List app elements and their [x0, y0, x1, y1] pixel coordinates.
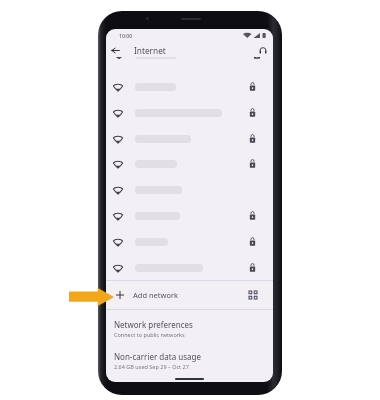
staticText: 2.64 GB used Sep 29 – Oct 27: [114, 363, 189, 370]
other: Callout arrow: [69, 288, 114, 306]
button[interactable]: [106, 177, 273, 202]
staticText: Connect to public networks: [114, 331, 185, 338]
button[interactable]: [106, 229, 273, 254]
staticText: 10:00: [119, 32, 133, 39]
button[interactable]: [106, 74, 273, 99]
staticText: Network preferences: [114, 319, 193, 330]
button[interactable]: [106, 203, 273, 228]
button[interactable]: Network preferences: [106, 313, 273, 344]
button[interactable]: [106, 255, 273, 280]
staticText: Non-carrier data usage: [114, 351, 201, 362]
staticText: Add network: [133, 290, 179, 300]
button[interactable]: Scan QR code to add network: [246, 288, 260, 302]
button[interactable]: Help and feedback: [253, 39, 273, 61]
button[interactable]: [106, 151, 273, 176]
button[interactable]: [106, 126, 273, 151]
button[interactable]: Non-carrier data usage: [106, 350, 273, 376]
button[interactable]: [106, 100, 273, 125]
staticText: Internet: [134, 45, 166, 56]
button[interactable]: Navigate up: [106, 39, 125, 61]
button[interactable]: Add network: [106, 281, 273, 309]
